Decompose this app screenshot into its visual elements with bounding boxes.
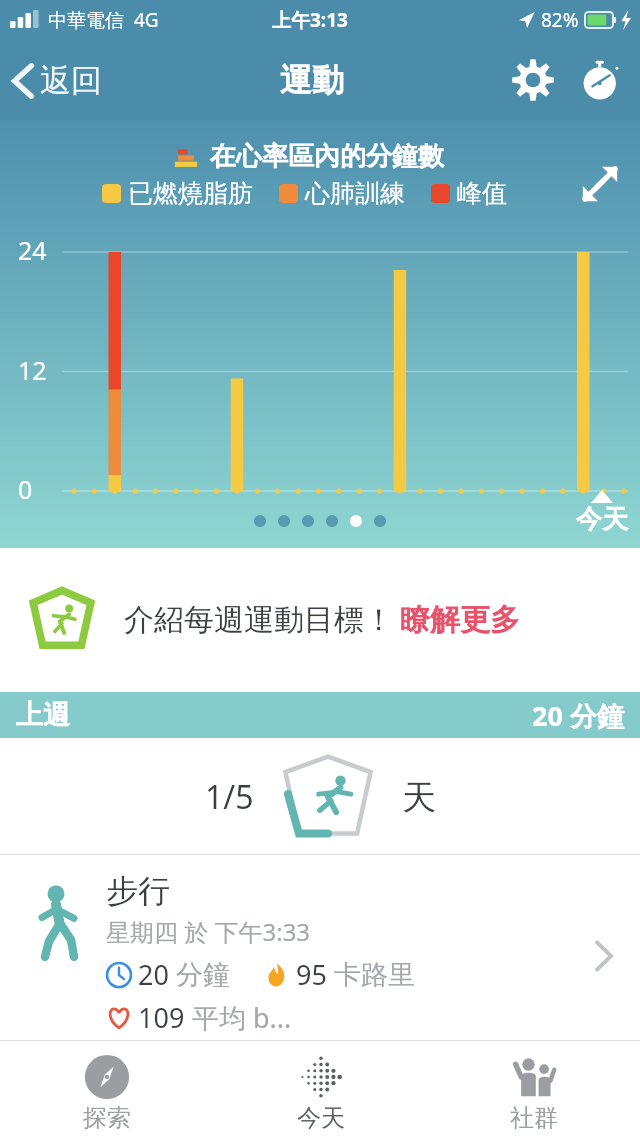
- staticText: 步行: [106, 871, 170, 911]
- staticText: 今天: [576, 503, 628, 536]
- staticText: 今天: [297, 1103, 345, 1133]
- button[interactable]: Expand chart: [574, 158, 626, 210]
- button[interactable]: 介紹每週運動目標！: [0, 548, 640, 692]
- staticText: 天: [402, 776, 436, 819]
- staticText: 峰值: [457, 178, 507, 209]
- staticText: 星期四 於 下午3:33: [106, 915, 311, 948]
- staticText: 已燃燒脂肪: [128, 178, 253, 209]
- button[interactable]: Settings: [498, 45, 568, 115]
- staticText: 社群: [510, 1103, 558, 1133]
- staticText: 上午3:13: [272, 7, 348, 33]
- staticText: 上週: [16, 698, 70, 732]
- button[interactable]: Stopwatch: [568, 45, 640, 115]
- staticText: 20 分鐘: [532, 697, 624, 734]
- staticText: 中華電信 4G: [48, 7, 159, 33]
- staticText: 在心率區內的分鐘數: [210, 140, 444, 173]
- staticText: 20: [138, 956, 176, 993]
- staticText: 運動: [280, 60, 344, 100]
- button[interactable]: 1/5: [0, 738, 640, 855]
- staticText: 109: [138, 999, 192, 1036]
- staticText: 82%: [541, 7, 579, 33]
- staticText: 返回: [40, 61, 102, 100]
- staticText: 12: [18, 353, 47, 387]
- button[interactable]: 今天: [214, 1042, 427, 1136]
- staticText: 心肺訓練: [305, 178, 405, 209]
- button[interactable]: 返回: [0, 53, 114, 108]
- staticText: 探索: [83, 1103, 131, 1133]
- staticText: 1/5: [205, 775, 254, 819]
- button[interactable]: 社群: [427, 1042, 640, 1136]
- staticText: 卡路里: [334, 958, 415, 992]
- staticText: 平均 b...: [192, 999, 292, 1036]
- staticText: 95: [296, 956, 334, 993]
- staticText: 24: [18, 233, 47, 267]
- staticText: 0: [18, 472, 33, 506]
- button[interactable]: 探索: [0, 1042, 214, 1136]
- button[interactable]: 步行: [0, 855, 640, 1041]
- staticText: 介紹每週運動目標！: [124, 601, 394, 639]
- button[interactable]: 瞭解更多: [400, 601, 520, 639]
- staticText: 分鐘: [176, 958, 230, 992]
